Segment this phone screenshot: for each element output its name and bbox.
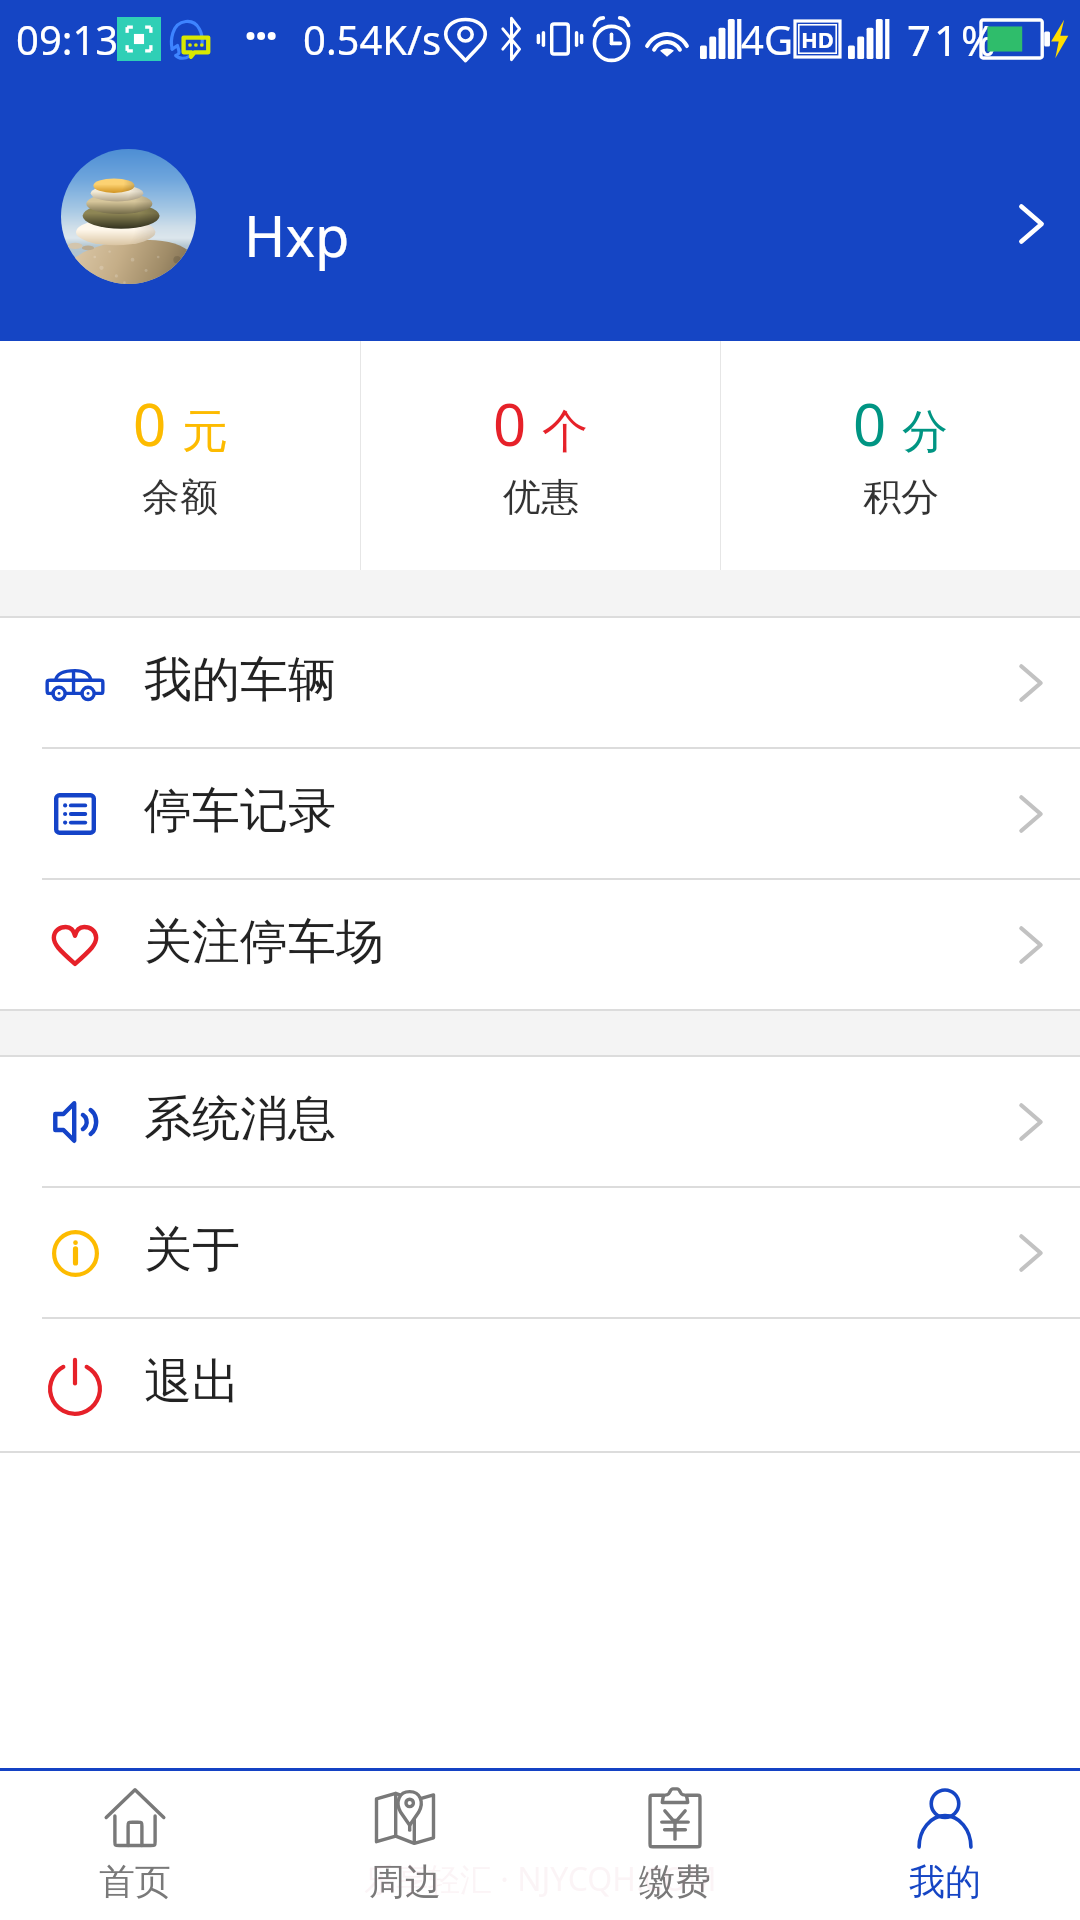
staticText: 优惠 (503, 473, 579, 521)
staticText: Hxp (244, 197, 350, 273)
staticText: 元 (182, 403, 228, 461)
staticText: 余额 (142, 473, 218, 521)
staticText: 退出 (144, 1352, 240, 1412)
staticText: 首页 (99, 1859, 171, 1904)
staticText: 0.54K/s (303, 12, 442, 66)
staticText: 关注停车场 (144, 912, 384, 972)
staticText: 0 (853, 384, 887, 463)
button[interactable]: 关注停车场 (0, 880, 1080, 1009)
button[interactable]: 0 (361, 341, 720, 570)
button[interactable]: 我的车辆 (0, 618, 1080, 747)
button[interactable]: 我的 (810, 1771, 1080, 1920)
button[interactable]: 0 (721, 341, 1080, 570)
staticText: 0 (493, 384, 527, 463)
staticText: 4G (741, 12, 793, 66)
button[interactable]: 首页 (0, 1771, 270, 1920)
staticText: 关于 (144, 1220, 240, 1280)
button[interactable]: 系统消息 (0, 1057, 1080, 1186)
staticText: 我的车辆 (144, 650, 336, 710)
button[interactable]: 退出 (0, 1319, 1080, 1451)
staticText: 乐享轻汇 · NJYCQH.COM (364, 1857, 717, 1901)
button[interactable]: 关于 (0, 1188, 1080, 1317)
staticText: 缴费 (639, 1859, 711, 1904)
staticText: 停车记录 (144, 781, 336, 841)
staticText: 个 (542, 403, 588, 461)
button[interactable]: 0 (0, 341, 360, 570)
staticText: HD (801, 24, 834, 54)
staticText: 周边 (369, 1859, 441, 1904)
staticText: 分 (902, 403, 948, 461)
staticText: 0 (133, 384, 167, 463)
staticText: 系统消息 (144, 1089, 336, 1149)
staticText: 我的 (909, 1859, 981, 1904)
staticText: 09:13 (16, 12, 119, 66)
button[interactable]: 缴费 (540, 1771, 810, 1920)
staticText: 积分 (863, 473, 939, 521)
staticText: 71% (907, 11, 999, 68)
button[interactable]: Hxp (0, 92, 1080, 341)
button[interactable]: 停车记录 (0, 749, 1080, 878)
button[interactable]: 周边 (270, 1771, 540, 1920)
